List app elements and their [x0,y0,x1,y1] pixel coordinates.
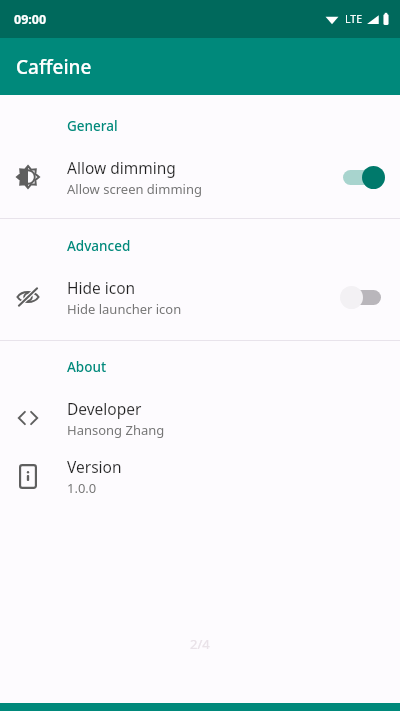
staticText: Hansong Zhang [67,421,165,439]
staticText: Version [67,456,122,477]
staticText: Caffeine [16,54,92,80]
staticText: Allow dimming [67,157,176,178]
staticText: Developer [67,398,142,419]
staticText: 2/4 [190,635,210,653]
button[interactable]: Hide icon [0,268,400,326]
staticText: About [67,358,107,376]
other: Developer [12,402,44,434]
button[interactable]: Brightness [0,148,400,206]
staticText: Allow screen dimming [67,180,202,198]
button[interactable] [340,164,386,190]
staticText: General [67,117,118,135]
staticText: LTE [345,12,362,26]
staticText: 1.0.0 [67,479,97,497]
other: Brightness [12,161,44,193]
button[interactable] [340,284,386,310]
other: Hide icon [12,281,44,313]
staticText: Hide launcher icon [67,300,182,318]
staticText: 09:00 [14,11,47,28]
button[interactable]: Version [0,447,400,505]
staticText: Hide icon [67,277,136,298]
staticText: Advanced [67,237,131,255]
other: Version [12,460,44,492]
button[interactable]: Developer [0,389,400,447]
